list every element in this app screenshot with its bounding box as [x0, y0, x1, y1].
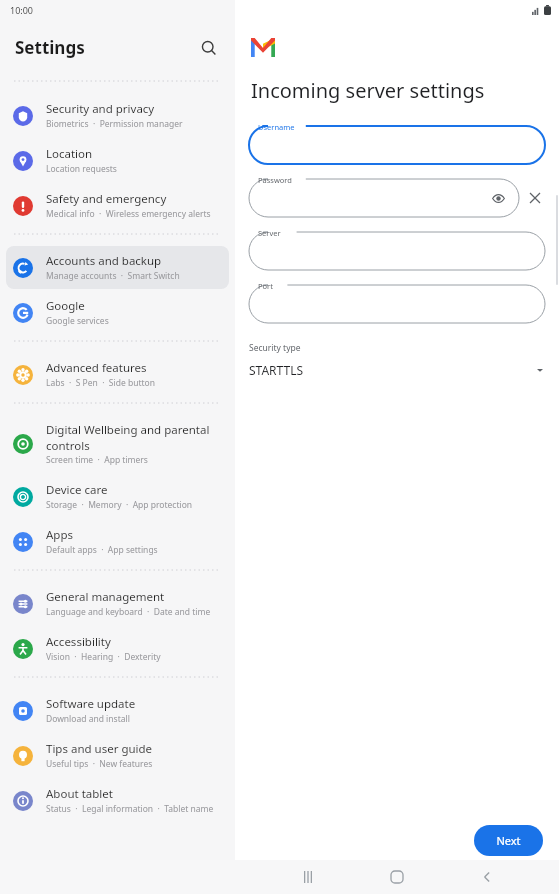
- staticText: Medical info · Wireless emergency alerts: [46, 208, 211, 220]
- staticText: Language and keyboard · Date and time: [46, 606, 211, 618]
- button[interactable]: Digital Wellbeing and parental controls: [6, 415, 229, 473]
- staticText: Device care: [46, 482, 108, 498]
- button[interactable]: Password: [249, 179, 519, 217]
- button[interactable]: Location: [6, 139, 229, 182]
- staticText: Default apps · App settings: [46, 544, 158, 556]
- staticText: 10:00: [10, 4, 34, 16]
- staticText: Next: [496, 833, 521, 848]
- button[interactable]: Device care: [6, 475, 229, 518]
- staticText: Biometrics · Permission manager: [46, 118, 183, 130]
- staticText: Safety and emergency: [46, 191, 167, 207]
- staticText: Accessibility: [46, 634, 111, 650]
- button[interactable]: General management: [6, 582, 229, 625]
- staticText: Tips and user guide: [46, 741, 153, 757]
- staticText: Location: [46, 146, 93, 162]
- staticText: Google services: [46, 315, 109, 327]
- staticText: Location requests: [46, 163, 117, 175]
- staticText: Manage accounts · Smart Switch: [46, 270, 180, 282]
- button[interactable]: Home: [380, 860, 414, 894]
- staticText: Accounts and backup: [46, 253, 162, 269]
- button[interactable]: Safety and emergency: [6, 184, 229, 227]
- button[interactable]: Security type: [249, 342, 545, 378]
- staticText: Screen time · App timers: [46, 454, 148, 466]
- button[interactable]: Accounts and backup: [6, 246, 229, 289]
- button[interactable]: Next: [474, 825, 543, 856]
- staticText: Username: [258, 122, 295, 132]
- button[interactable]: About tablet: [6, 779, 229, 822]
- button[interactable]: Security and privacy: [6, 94, 229, 137]
- staticText: Apps: [46, 527, 74, 543]
- button[interactable]: Search: [195, 34, 223, 62]
- staticText: Digital Wellbeing and parental controls: [46, 422, 221, 453]
- staticText: STARTTLS: [249, 362, 535, 378]
- staticText: Useful tips · New features: [46, 758, 153, 770]
- staticText: Security type: [249, 342, 301, 354]
- button[interactable]: Google: [6, 291, 229, 334]
- staticText: Software update: [46, 696, 136, 712]
- button[interactable]: Accessibility: [6, 627, 229, 670]
- button[interactable]: Recents: [291, 860, 325, 894]
- staticText: Port: [258, 281, 273, 291]
- button[interactable]: Server: [249, 232, 545, 270]
- staticText: Labs · S Pen · Side button: [46, 377, 155, 389]
- staticText: Incoming server settings: [251, 77, 485, 104]
- staticText: General management: [46, 589, 165, 605]
- staticText: Password: [258, 175, 292, 185]
- button[interactable]: Username: [249, 126, 545, 164]
- button[interactable]: Software update: [6, 689, 229, 732]
- staticText: Server: [258, 228, 281, 238]
- staticText: Advanced features: [46, 360, 147, 376]
- staticText: Storage · Memory · App protection: [46, 499, 193, 511]
- staticText: Security and privacy: [46, 101, 155, 117]
- button[interactable]: Port: [249, 285, 545, 323]
- staticText: Settings: [15, 36, 85, 59]
- button[interactable]: Show password: [489, 189, 507, 207]
- button[interactable]: Clear: [525, 188, 545, 208]
- button[interactable]: Back: [470, 860, 504, 894]
- staticText: About tablet: [46, 786, 113, 802]
- button[interactable]: Tips and user guide: [6, 734, 229, 777]
- staticText: Status · Legal information · Tablet name: [46, 803, 214, 815]
- staticText: Vision · Hearing · Dexterity: [46, 651, 161, 663]
- button[interactable]: Apps: [6, 520, 229, 563]
- staticText: Google: [46, 298, 85, 314]
- staticText: Download and install: [46, 713, 130, 725]
- button[interactable]: Advanced features: [6, 353, 229, 396]
